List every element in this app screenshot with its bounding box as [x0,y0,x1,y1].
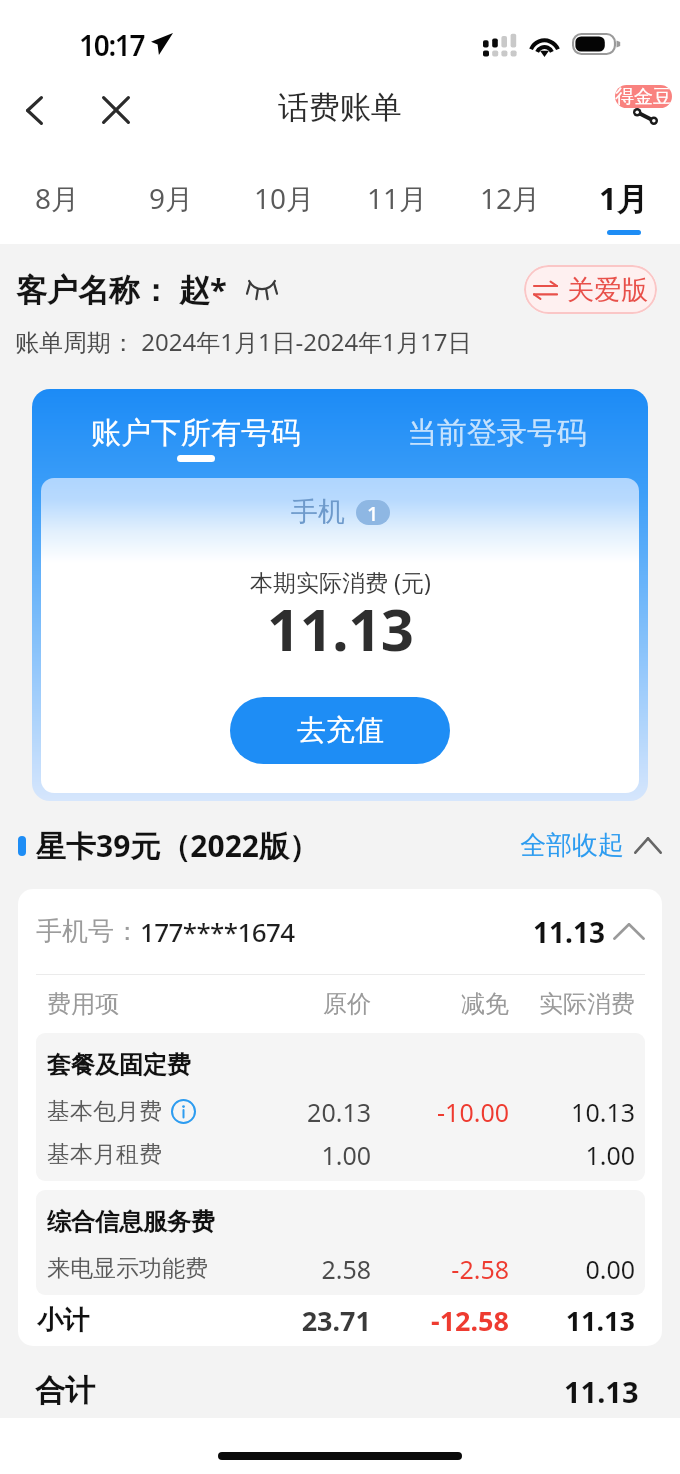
staticText: 话费账单 [278,88,402,127]
staticText: 合计 [35,1372,95,1410]
staticText: 综合信息服务费 [47,1207,215,1237]
staticText: 全部收起 [520,829,624,862]
staticText: 本期实际消费 (元) [250,566,431,597]
staticText: 20.13 [239,1095,371,1129]
staticText: 账单周期： 2024年1月1日-2024年1月17日 [15,325,472,358]
staticText: 基本包月费 [47,1097,162,1126]
staticText: 2.58 [239,1252,371,1286]
staticText: 星卡39元（2022版） [36,825,319,866]
staticText: 原价 [239,989,371,1019]
button[interactable]: 显示客户名称 [247,280,277,296]
staticText: 来电显示功能费 [47,1254,208,1283]
button[interactable]: 去充值 [230,697,450,764]
staticText: 10月 [254,179,315,217]
staticText: 1.00 [509,1138,635,1172]
staticText: 11.13 [533,913,605,951]
button[interactable]: 关闭 [87,81,145,139]
staticText: 套餐及固定费 [47,1050,191,1080]
staticText: 关爱版 [567,273,648,307]
button[interactable]: 当前登录号码 [346,389,648,478]
staticText: 当前登录号码 [407,414,587,452]
staticText: 11.13 [509,1302,635,1339]
staticText: 客户名称： 赵* [16,268,227,310]
button[interactable]: 关爱版 [524,265,657,314]
staticText: 得金豆 [615,85,672,108]
staticText: 177****1674 [140,914,295,949]
staticText: 实际消费 [509,989,635,1019]
button[interactable]: 12月 [454,152,567,244]
staticText: 8月 [35,179,80,217]
staticText: 去充值 [297,712,384,749]
button[interactable]: 费用说明 [171,1099,196,1124]
staticText: -10.00 [371,1095,509,1129]
button[interactable]: 1月 [567,152,680,244]
staticText: 10.13 [509,1095,635,1129]
staticText: 费用项 [47,989,239,1019]
staticText: 减免 [371,989,509,1019]
staticText: 1月 [599,177,648,219]
staticText: 小计 [37,1304,239,1337]
button[interactable]: 账户下所有号码 [45,389,346,478]
button[interactable]: 11月 [341,152,454,244]
staticText: 基本月租费 [47,1140,162,1169]
button[interactable]: 8月 [0,152,114,244]
staticText: 账户下所有号码 [91,414,301,452]
staticText: 9月 [149,179,194,217]
staticText: 0.00 [509,1252,635,1286]
staticText: 1 [367,500,379,525]
button[interactable]: 9月 [114,152,228,244]
staticText: 11.13 [267,589,414,668]
staticText: 手机号： [36,915,140,948]
staticText: 11月 [367,179,428,217]
staticText: 11.13 [564,1372,639,1411]
button[interactable]: 手机号： [36,889,645,974]
button[interactable]: 分享 [613,94,663,125]
staticText: -12.58 [371,1302,509,1339]
staticText: 手机 [291,495,345,529]
staticText: 23.71 [239,1302,371,1339]
staticText: 10:17 [79,26,145,64]
staticText: 12月 [480,179,541,217]
button[interactable]: 全部收起 [520,829,662,862]
button[interactable]: 10月 [228,152,341,244]
button[interactable]: 返回 [5,81,63,139]
staticText: -2.58 [371,1252,509,1286]
staticText: 1.00 [239,1138,371,1172]
